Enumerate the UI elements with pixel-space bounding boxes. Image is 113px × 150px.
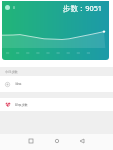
button[interactable]: Profile bbox=[5, 5, 10, 10]
button[interactable]: Home bbox=[50, 134, 63, 147]
button[interactable]: Recents bbox=[24, 134, 37, 147]
staticText: 清除 bbox=[15, 82, 22, 86]
button[interactable]: 获取步数 bbox=[0, 98, 113, 111]
button[interactable]: 清除 bbox=[0, 76, 113, 92]
staticText: 获取步数 bbox=[15, 103, 28, 107]
staticText: 今日步数 bbox=[5, 70, 18, 74]
button[interactable]: Back bbox=[75, 134, 88, 147]
staticText: 步数：9051 bbox=[63, 3, 103, 13]
